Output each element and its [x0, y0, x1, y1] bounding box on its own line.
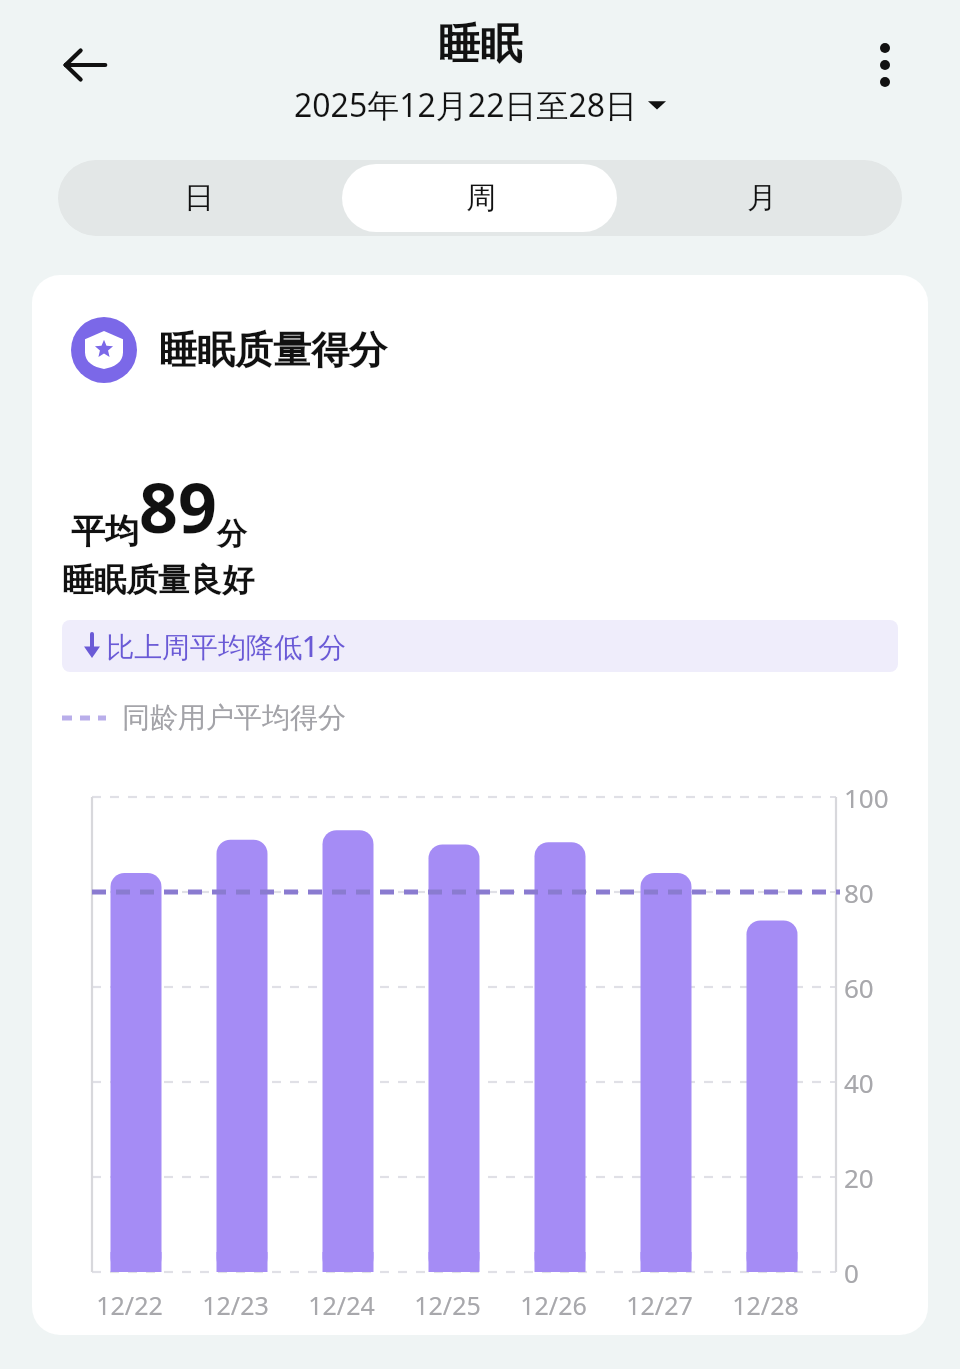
staticText: 睡眠质量良好 — [62, 560, 254, 600]
staticText: 12/28 — [732, 1288, 799, 1322]
button[interactable]: More options — [852, 32, 918, 98]
staticText: 0 — [844, 1255, 859, 1290]
staticText: 月 — [747, 179, 777, 217]
button[interactable]: 周 — [340, 160, 621, 236]
staticText: 60 — [844, 970, 874, 1005]
staticText: 2025年12月22日至28日 — [294, 83, 638, 127]
staticText: 20 — [844, 1160, 874, 1195]
staticText: 睡眠 — [438, 18, 522, 71]
staticText: 12/24 — [308, 1288, 375, 1322]
staticText: 平均 — [71, 510, 139, 553]
staticText: 分 — [217, 515, 247, 553]
button[interactable]: 月 — [621, 160, 902, 236]
staticText: 80 — [844, 875, 874, 910]
staticText: 89 — [139, 460, 217, 553]
staticText: 比上周平均降低1分 — [106, 627, 347, 665]
staticText: 12/23 — [202, 1288, 269, 1322]
staticText: 日 — [184, 179, 214, 217]
staticText: 12/25 — [414, 1288, 481, 1322]
staticText: 同龄用户平均得分 — [122, 700, 346, 735]
button[interactable]: 2025年12月22日至28日 — [286, 81, 674, 129]
button[interactable]: 比上周平均降低1分 — [62, 620, 898, 672]
button[interactable]: 日 — [58, 160, 340, 236]
staticText: 睡眠质量得分 — [159, 326, 387, 374]
staticText: 40 — [844, 1065, 874, 1100]
button[interactable]: Back — [50, 30, 120, 100]
staticText: 12/22 — [96, 1288, 163, 1322]
staticText: 100 — [844, 780, 889, 815]
staticText: 12/26 — [520, 1288, 587, 1322]
staticText: 周 — [466, 179, 496, 217]
staticText: 12/27 — [626, 1288, 693, 1322]
